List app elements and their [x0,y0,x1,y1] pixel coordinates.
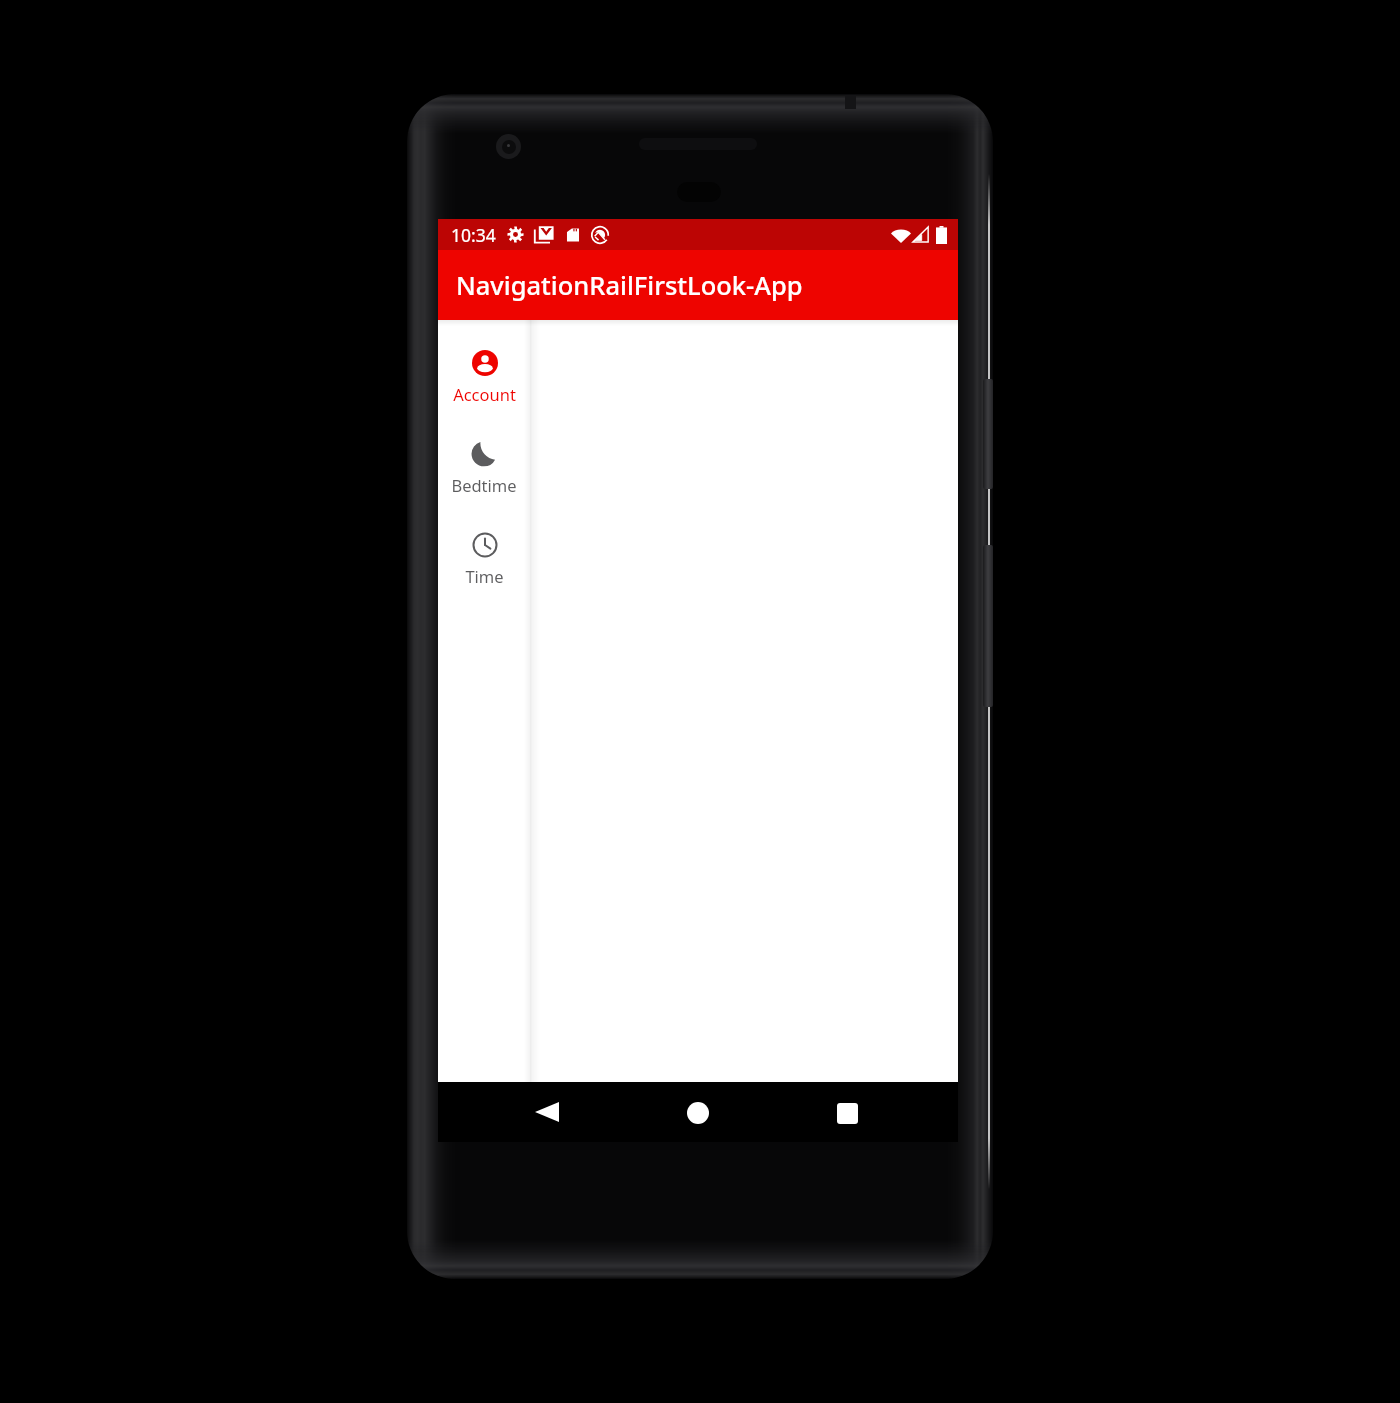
button[interactable]: Account [438,332,530,423]
button[interactable]: Home [652,1082,744,1142]
button[interactable]: Back [501,1082,593,1142]
button[interactable]: Time [438,514,530,605]
staticText: NavigationRailFirstLook-App [456,268,803,303]
staticText: Account [453,383,516,405]
button[interactable]: NavigationRailFirstLook-App [438,250,958,320]
button[interactable]: Recent apps [801,1082,893,1142]
staticText: Time [465,565,504,587]
button[interactable]: Bedtime [438,423,530,514]
staticText: 10:34 [451,223,496,247]
staticText: Bedtime [451,474,517,496]
